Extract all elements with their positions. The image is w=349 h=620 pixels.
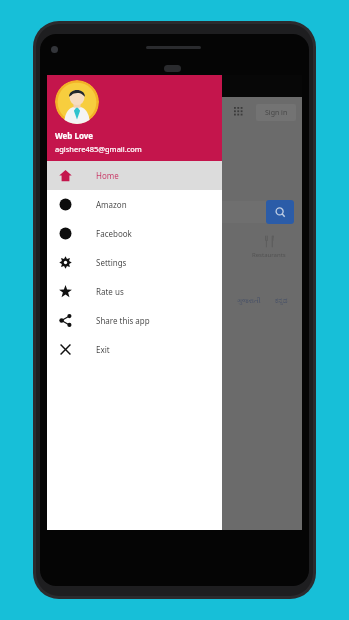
- staticText: Web Love: [55, 130, 94, 141]
- button[interactable]: Exit: [47, 335, 222, 364]
- staticText: Sign in: [265, 108, 288, 118]
- staticText: ಕನ್ನಡ: [275, 297, 288, 304]
- button[interactable]: Sign in: [256, 104, 296, 121]
- button[interactable]: Rate us: [47, 277, 222, 306]
- staticText: Share this app: [96, 315, 150, 326]
- button[interactable]: Facebook: [47, 219, 222, 248]
- button[interactable]: Google apps: [229, 102, 249, 122]
- button[interactable]: Home: [47, 161, 222, 190]
- staticText: ગુજરાતી: [237, 297, 261, 304]
- staticText: Rate us: [96, 286, 124, 297]
- staticText: Restaurants: [252, 251, 286, 259]
- button[interactable]: Amazon: [47, 190, 222, 219]
- button[interactable]: Settings: [47, 248, 222, 277]
- staticText: Settings: [96, 257, 127, 268]
- button[interactable]: Profile picture: [55, 80, 99, 124]
- staticText: Exit: [96, 344, 110, 355]
- staticText: Home: [96, 170, 119, 181]
- staticText: agishere485@gmail.com: [55, 144, 142, 154]
- staticText: Amazon: [96, 199, 127, 210]
- staticText: Facebook: [96, 228, 132, 239]
- button[interactable]: Search: [266, 200, 294, 224]
- button[interactable]: Share this app: [47, 306, 222, 335]
- button[interactable]: Restaurants: [252, 235, 286, 259]
